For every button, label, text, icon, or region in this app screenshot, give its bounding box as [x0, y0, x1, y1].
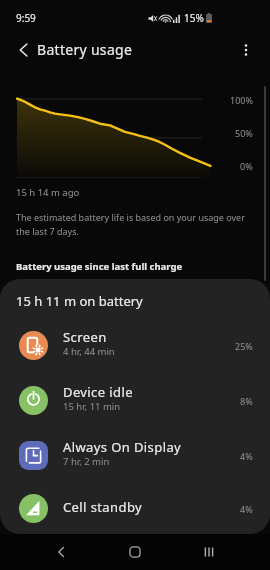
button[interactable]: Recent apps — [172, 534, 246, 570]
staticText: 4% — [240, 503, 253, 515]
staticText: 0% — [240, 160, 253, 172]
staticText: Device idle — [63, 383, 133, 401]
staticText: 15% — [184, 11, 204, 25]
staticText: 15 h 14 m ago — [16, 186, 80, 199]
button[interactable]: Back — [5, 32, 41, 68]
staticText: 50% — [235, 127, 253, 139]
button[interactable]: Screen — [0, 318, 270, 373]
staticText: Battery usage — [37, 40, 133, 59]
button[interactable]: Home — [98, 534, 172, 570]
staticText: 25% — [235, 340, 253, 352]
staticText: 4% — [240, 450, 253, 462]
staticText: 15 h 11 m on battery — [16, 292, 143, 310]
staticText: Cell standby — [63, 498, 143, 516]
staticText: Screen — [63, 328, 107, 346]
button[interactable]: Back — [24, 534, 98, 570]
staticText: 15 hr, 11 min — [63, 400, 121, 413]
staticText: 100% — [230, 94, 253, 106]
button[interactable]: Always On Display — [0, 428, 270, 483]
button[interactable]: More options — [228, 32, 264, 68]
button[interactable]: Cell standby — [0, 483, 270, 534]
staticText: 8% — [240, 395, 253, 407]
staticText: 9:59 — [16, 11, 36, 25]
staticText: Battery usage since last full charge — [16, 260, 183, 273]
staticText: 7 hr, 2 min — [63, 455, 110, 468]
staticText: 4 hr, 44 min — [63, 345, 115, 358]
staticText: The estimated battery life is based on y… — [16, 211, 254, 238]
staticText: Always On Display — [63, 438, 182, 456]
button[interactable]: Device idle — [0, 373, 270, 428]
